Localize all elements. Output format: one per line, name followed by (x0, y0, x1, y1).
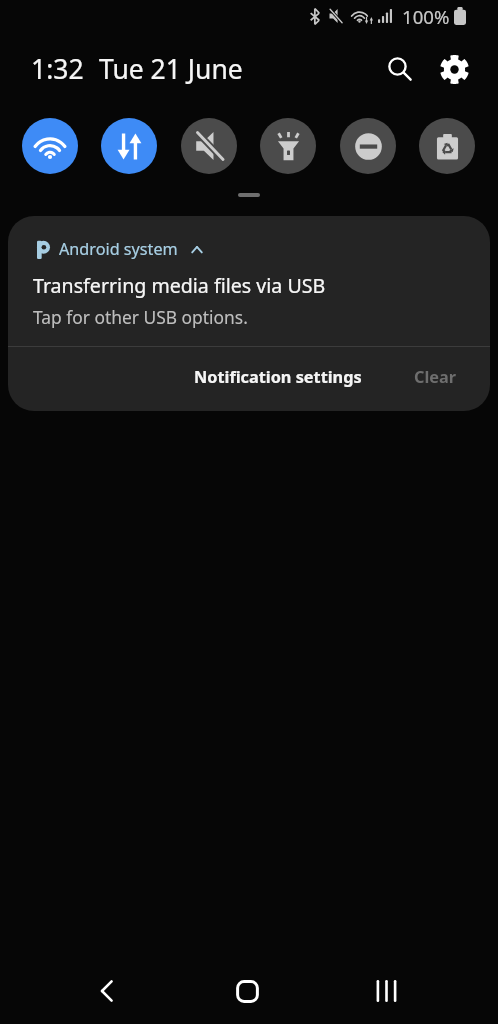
button[interactable]: Sound off (181, 118, 237, 174)
button[interactable]: Notification settings (180, 356, 376, 402)
staticText: Android system (59, 238, 178, 260)
button[interactable]: Power saving (419, 118, 475, 174)
staticText: Clear (414, 366, 457, 388)
button[interactable]: Wi-Fi (22, 118, 78, 174)
button[interactable]: Flashlight (260, 118, 316, 174)
staticText: Notification settings (194, 366, 362, 388)
button[interactable]: Home (217, 962, 277, 1020)
button[interactable]: Back (76, 962, 136, 1020)
staticText: Transferring media files via USB (33, 272, 326, 299)
staticText: 1:32 (31, 51, 84, 87)
button[interactable]: Recents (356, 962, 416, 1020)
button[interactable]: Search (377, 46, 423, 92)
button[interactable]: Do not disturb (340, 118, 396, 174)
button[interactable]: Clear (400, 356, 471, 402)
button[interactable]: Android system (8, 216, 490, 411)
button[interactable]: Mobile data (101, 118, 157, 174)
staticText: Tap for other USB options. (33, 305, 248, 329)
staticText: Tue 21 June (99, 51, 243, 87)
staticText: 100% (402, 4, 450, 29)
button[interactable]: Settings (431, 46, 477, 92)
